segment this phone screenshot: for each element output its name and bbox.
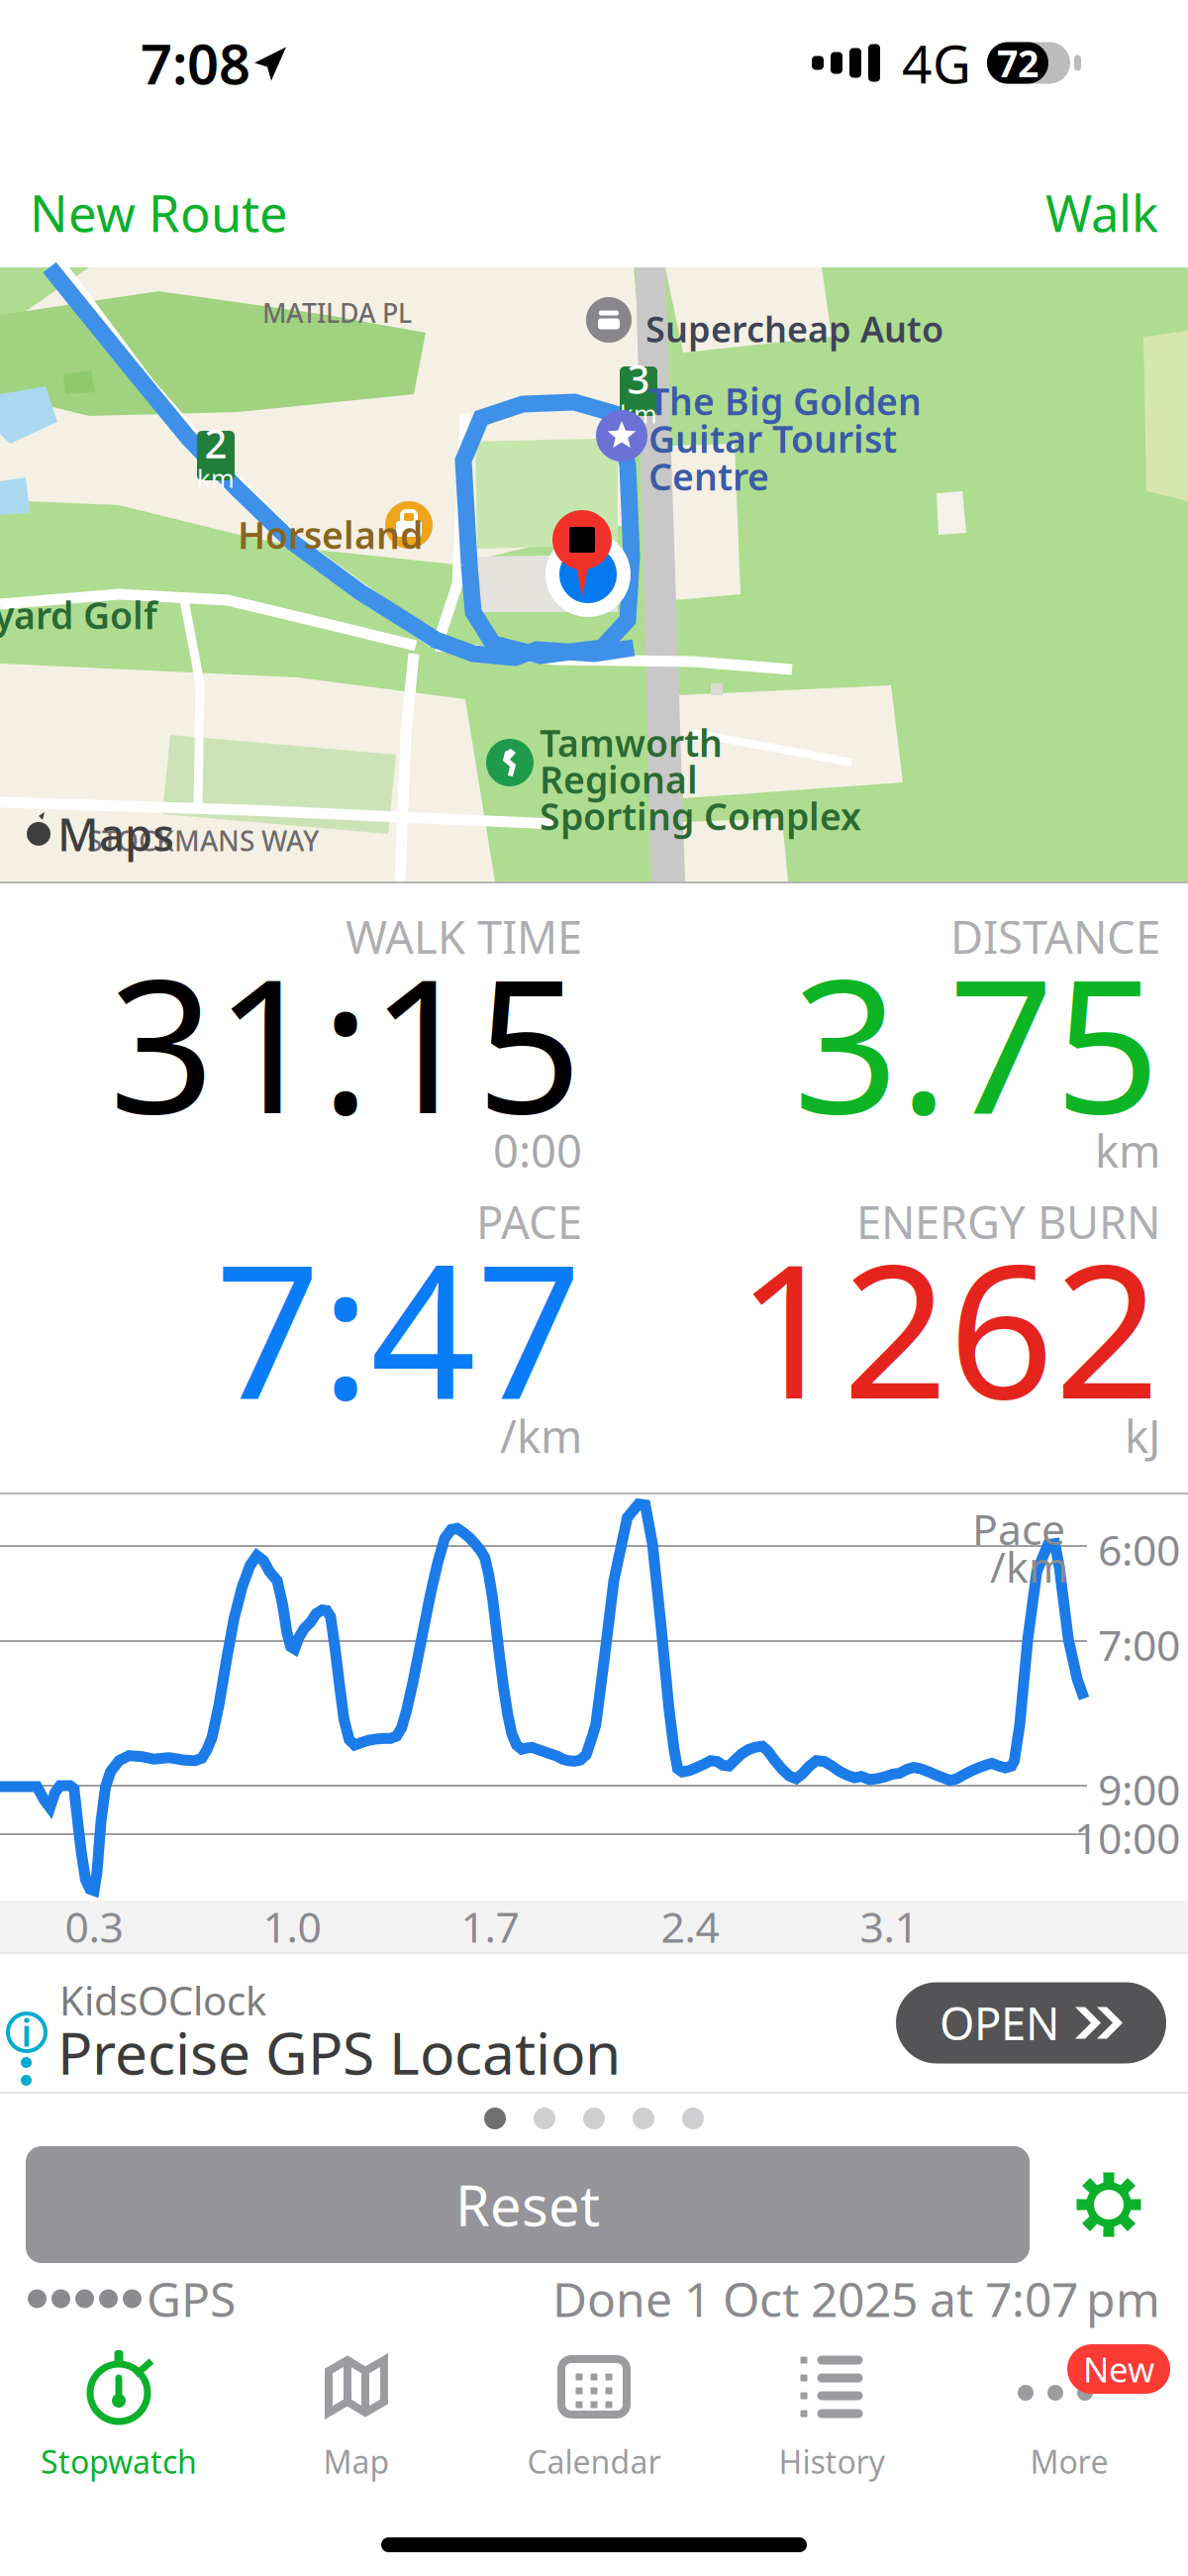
staticText: 3.75 [793,919,1160,1164]
staticText: 1262 [737,1204,1160,1449]
staticText: 72 [997,38,1039,87]
staticText: Done 1 Oct 2025 at 7:07 pm [552,2267,1160,2330]
staticText: 3.1 [860,1898,918,1954]
staticText: The Big Golden [648,376,922,425]
staticText: 9:00 [1098,1761,1180,1817]
staticText: More [1030,2440,1108,2482]
staticText: 2 [204,417,227,469]
staticText: Maps [57,804,174,864]
staticText: 0:00 [493,1121,582,1180]
staticText: Supercheap Auto [645,305,943,352]
button[interactable]: Walk [1016,131,1188,250]
staticText: i [21,2008,32,2057]
staticText: 10:00 [1074,1809,1180,1866]
staticText: GPS [147,2267,236,2330]
staticText: km [1095,1121,1160,1180]
button[interactable]: New [950,2331,1188,2510]
staticText: 4G [902,28,971,98]
staticText: Sporting Complex [540,791,861,840]
staticText: Horseland [238,510,423,559]
staticText: Walk [1045,179,1158,246]
button[interactable]: Calendar [475,2331,713,2510]
staticText: Map [323,2440,390,2482]
button[interactable]: Map [238,2331,475,2510]
staticText: 3 [627,352,650,405]
staticText: kJ [1125,1406,1160,1465]
staticText: yard Golf [0,590,157,639]
button[interactable]: Reset [26,2146,1030,2263]
staticText: New Route [30,179,288,246]
staticText: /km [990,1538,1068,1594]
staticText: PACE [476,1192,582,1251]
button[interactable]: History [713,2331,950,2510]
staticText: /km [500,1406,582,1465]
staticText: 7:08 [141,26,250,100]
staticText: KidsOClock [59,1974,266,2026]
staticText: Reset [455,2168,600,2241]
staticText: Stopwatch [41,2440,197,2482]
button[interactable]: Stopwatch [0,2331,238,2510]
staticText: km [197,461,235,495]
staticText: 1.7 [461,1898,519,1954]
staticText: Precise GPS Location [57,2013,621,2091]
staticText: 1.0 [263,1898,321,1954]
staticText: 6:00 [1098,1521,1180,1577]
button[interactable]: Settings [1030,2146,1188,2263]
staticText: Tamworth [540,718,723,767]
staticText: 31:15 [109,919,582,1164]
staticText: OPEN [940,1993,1059,2053]
staticText: Calendar [527,2440,661,2482]
staticText: DISTANCE [950,907,1160,966]
button[interactable]: i [0,1952,1188,2094]
staticText: Pace [972,1500,1065,1557]
staticText: 0.3 [65,1898,123,1954]
staticText: WALK TIME [346,907,582,966]
staticText: New [1083,2346,1154,2392]
staticText: 2.4 [661,1898,719,1954]
button[interactable]: New Route [0,131,318,250]
staticText: Guitar Tourist [648,414,897,463]
staticText: km [620,397,657,430]
staticText: Regional [540,755,698,804]
staticText: 7:47 [215,1204,582,1449]
staticText: STOCKMANS WAY [87,822,319,859]
staticText: ENERGY BURN [856,1192,1160,1251]
staticText: 7:00 [1098,1616,1180,1672]
staticText: History [779,2440,885,2482]
staticText: Centre [648,452,769,501]
staticText: MATILDA PL [262,295,412,330]
